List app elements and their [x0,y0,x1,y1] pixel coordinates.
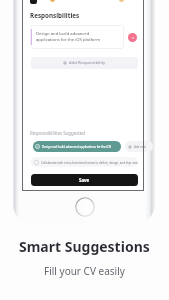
button[interactable]: Design and build advanced [30,25,124,49]
staticText: Responsibilities [30,11,80,20]
staticText: Collaborate with cross-functional teams … [41,161,138,165]
staticText: Add new [134,145,146,149]
staticText: Design and build advanced applications f… [42,145,121,149]
button[interactable]: Add Responsibility [31,57,138,69]
staticText: Add Responsibility [69,60,106,66]
staticText: applications for the iOS platform [36,37,101,43]
button[interactable]: Home [75,197,95,217]
staticText: Fill your CV easily [44,264,125,278]
button[interactable]: Design and build advanced applications f… [33,141,121,152]
staticText: Design and build advanced [36,31,90,37]
button[interactable]: Collaborate with cross-functional teams … [31,157,138,167]
button[interactable]: Remove responsibility [128,33,137,42]
button[interactable]: Add new [125,141,153,152]
staticText: Responsibilities Suggested [30,130,86,136]
staticText: Smart Suggestions [19,237,150,256]
button[interactable]: Save [31,174,138,186]
staticText: Save [79,177,90,183]
